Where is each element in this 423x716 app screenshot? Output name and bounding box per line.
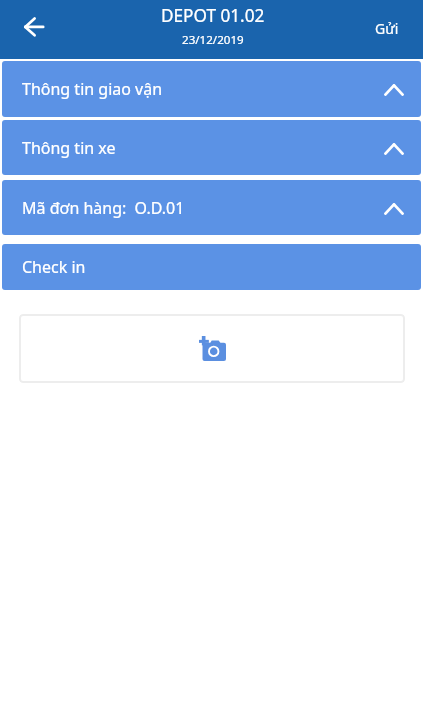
button[interactable]: Check in [2,244,421,290]
staticText: Check in [22,256,86,278]
button[interactable]: Thông tin giao vận [2,61,421,117]
staticText: 23/12/2019 [182,32,244,48]
button[interactable]: Gửi [367,13,407,44]
staticText: Mã đơn hàng: O.D.01 [22,197,185,219]
staticText: Thông tin giao vận [22,78,163,100]
staticText: Gửi [375,19,399,38]
button[interactable]: Mã đơn hàng: O.D.01 [2,180,421,235]
button[interactable]: Thông tin xe [2,120,421,175]
button[interactable]: Back [11,5,55,49]
button[interactable]: Add photo [19,314,405,383]
staticText: Thông tin xe [22,137,116,159]
staticText: DEPOT 01.02 [161,4,265,27]
